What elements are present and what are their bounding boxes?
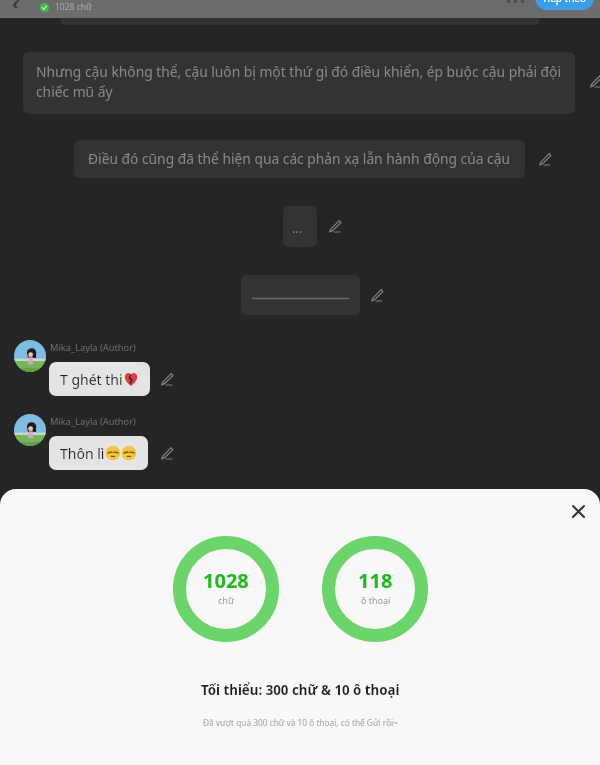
button[interactable]: Avatar [14, 414, 46, 446]
button[interactable]: Close [566, 499, 590, 523]
staticText: T ghét thi [60, 370, 123, 389]
button[interactable]: Edit [328, 219, 342, 233]
button[interactable]: Edit [160, 372, 174, 386]
button[interactable]: Edit [538, 152, 552, 166]
button[interactable]: Avatar [14, 340, 46, 372]
staticText: 118 [358, 567, 393, 594]
staticText: Mika_Layla (Author) [50, 415, 136, 428]
staticText: chữ [218, 594, 234, 606]
button[interactable]: Nhưng cậu không thể, cậu luôn bị một thứ… [23, 52, 575, 114]
button[interactable]: Thôn lì [49, 436, 148, 470]
staticText: Tối thiểu: 300 chữ & 10 ô thoại [201, 681, 400, 699]
staticText: Thôn lì [60, 444, 105, 463]
staticText: 1028 chữ [55, 1, 92, 13]
staticText: Nhưng cậu không thể, cậu luôn bị một thứ… [36, 62, 562, 102]
staticText: Đã vượt quá 300 chữ và 10 ô thoại, có th… [203, 717, 398, 728]
button[interactable] [241, 275, 360, 315]
button[interactable]: Điều đó cũng đã thể hiện qua các phản xạ… [74, 140, 525, 178]
button[interactable]: Tiếp theo [535, 0, 594, 10]
button[interactable]: Edit [160, 446, 174, 460]
button[interactable]: Edit [370, 288, 384, 302]
staticText: Tiếp theo [542, 0, 587, 5]
button[interactable]: Edit [589, 74, 600, 88]
staticText: 1028 [203, 567, 249, 594]
button[interactable]: ... [283, 206, 317, 247]
staticText: ô thoại [361, 594, 391, 606]
button[interactable]: More options [503, 0, 529, 10]
button[interactable]: Back [10, 0, 32, 8]
button[interactable]: T ghét thi [49, 362, 150, 396]
staticText: Điều đó cũng đã thể hiện qua các phản xạ… [88, 149, 510, 168]
staticText: Mika_Layla (Author) [50, 341, 136, 354]
staticText: ... [292, 220, 303, 233]
